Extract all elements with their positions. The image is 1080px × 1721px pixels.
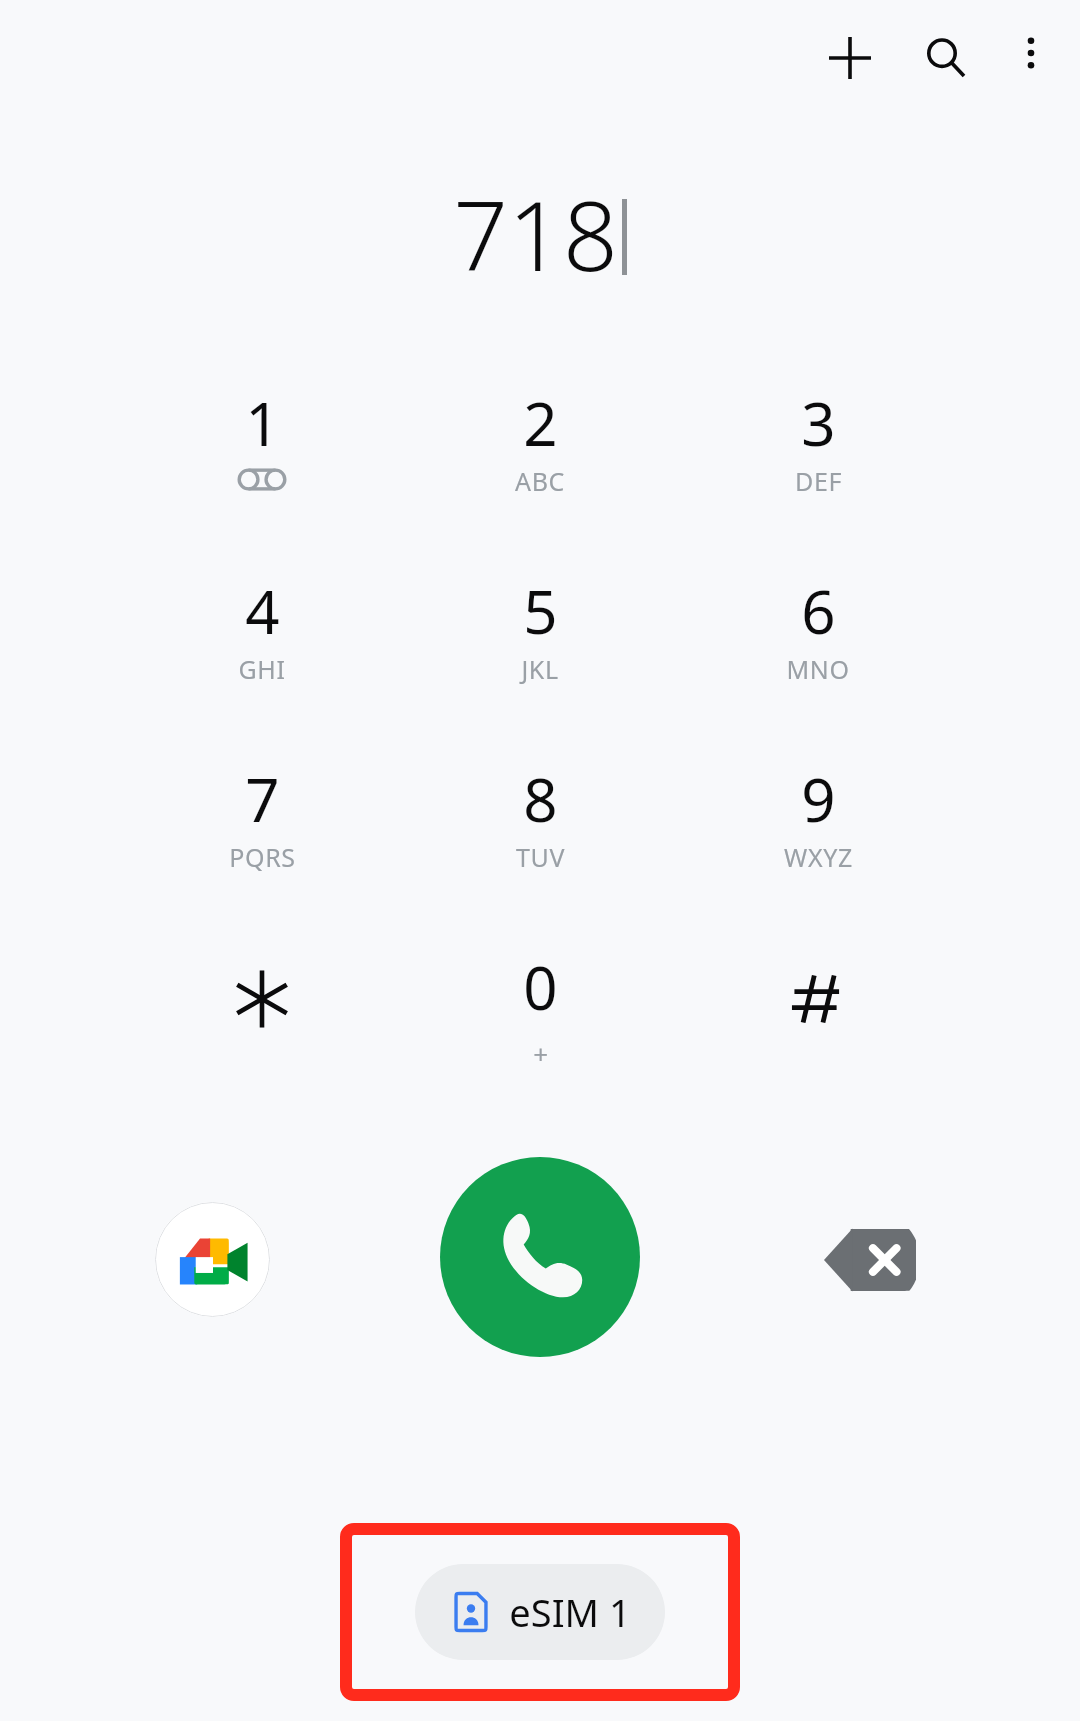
button[interactable]: 0 xyxy=(401,946,679,1122)
button[interactable]: 9 xyxy=(679,758,957,946)
staticText: DEF xyxy=(795,464,842,498)
button[interactable]: Video call with Google Meet xyxy=(155,1202,270,1317)
button[interactable]: 4 xyxy=(123,570,401,758)
staticText: 1 xyxy=(245,382,280,464)
staticText: 0 xyxy=(523,946,558,1028)
staticText: 9 xyxy=(801,758,836,840)
button[interactable]: 7 xyxy=(123,758,401,946)
button[interactable]: Call xyxy=(440,1157,640,1357)
staticText: GHI xyxy=(238,652,286,686)
staticText: 718 xyxy=(453,168,618,299)
staticText: + xyxy=(533,1036,549,1071)
staticText: WXYZ xyxy=(784,840,853,874)
button[interactable]: 1 xyxy=(123,382,401,570)
button[interactable]: 6 xyxy=(679,570,957,758)
staticText: MNO xyxy=(786,652,850,686)
button[interactable]: More options xyxy=(994,10,1068,96)
button[interactable] xyxy=(123,946,401,1122)
staticText: 7 xyxy=(245,758,280,840)
button[interactable]: 5 xyxy=(401,570,679,758)
button[interactable]: 3 xyxy=(679,382,957,570)
staticText: 5 xyxy=(523,570,558,652)
staticText: 4 xyxy=(245,570,280,652)
button[interactable]: 8 xyxy=(401,758,679,946)
staticText: JKL xyxy=(521,652,559,686)
staticText: ABC xyxy=(515,464,565,498)
button[interactable] xyxy=(679,946,957,1122)
staticText: 2 xyxy=(523,382,558,464)
staticText: 6 xyxy=(801,570,836,652)
button[interactable]: Backspace xyxy=(820,1210,920,1310)
staticText: TUV xyxy=(516,840,565,874)
staticText: 8 xyxy=(523,758,558,840)
staticText: PQRS xyxy=(229,840,296,874)
staticText: 3 xyxy=(801,382,836,464)
button[interactable]: eSIM 1 xyxy=(415,1564,665,1660)
button[interactable]: 2 xyxy=(401,382,679,570)
button[interactable]: Search xyxy=(898,10,994,106)
staticText: eSIM 1 xyxy=(509,1586,631,1638)
button[interactable]: Add contact xyxy=(802,10,898,106)
